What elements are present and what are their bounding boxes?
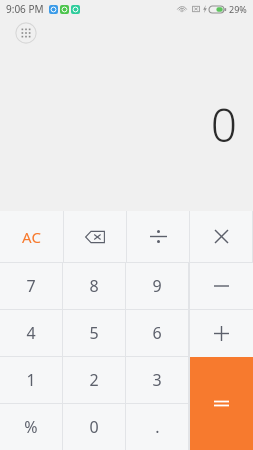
staticText: 1 bbox=[26, 369, 36, 391]
button[interactable]: Divide bbox=[127, 211, 189, 262]
staticText: 29% bbox=[229, 3, 247, 15]
button[interactable]: 5 bbox=[63, 310, 125, 356]
staticText: 0 bbox=[210, 93, 237, 156]
staticText: AC bbox=[22, 227, 41, 247]
staticText: . bbox=[155, 416, 160, 438]
button[interactable]: 4 bbox=[0, 310, 62, 356]
staticText: 8 bbox=[89, 275, 99, 297]
staticText: 9 bbox=[152, 275, 162, 297]
button[interactable]: 9 bbox=[126, 263, 188, 309]
staticText: 9:06 PM bbox=[6, 2, 44, 16]
button[interactable]: Menu bbox=[15, 22, 37, 44]
button[interactable]: Minus bbox=[190, 263, 253, 309]
staticText: 2 bbox=[89, 369, 99, 391]
button[interactable]: 1 bbox=[0, 357, 62, 403]
button[interactable]: AC bbox=[0, 211, 63, 262]
button[interactable]: % bbox=[0, 404, 62, 450]
button[interactable]: 0 bbox=[63, 404, 125, 450]
button[interactable]: Equals bbox=[190, 357, 253, 450]
staticText: 4 bbox=[26, 322, 36, 344]
staticText: 6 bbox=[152, 322, 162, 344]
staticText: 0 bbox=[89, 416, 99, 438]
staticText: % bbox=[24, 416, 38, 438]
button[interactable]: Plus bbox=[190, 310, 253, 357]
button[interactable]: Multiply bbox=[190, 211, 252, 262]
button[interactable]: 2 bbox=[63, 357, 125, 403]
button[interactable]: 8 bbox=[63, 263, 125, 309]
staticText: 7 bbox=[26, 275, 36, 297]
button[interactable]: . bbox=[126, 404, 188, 450]
button[interactable]: 3 bbox=[126, 357, 188, 403]
button[interactable]: 6 bbox=[126, 310, 188, 356]
button[interactable]: 7 bbox=[0, 263, 62, 309]
staticText: 3 bbox=[152, 369, 162, 391]
staticText: 5 bbox=[89, 322, 99, 344]
button[interactable]: Backspace bbox=[64, 211, 126, 262]
